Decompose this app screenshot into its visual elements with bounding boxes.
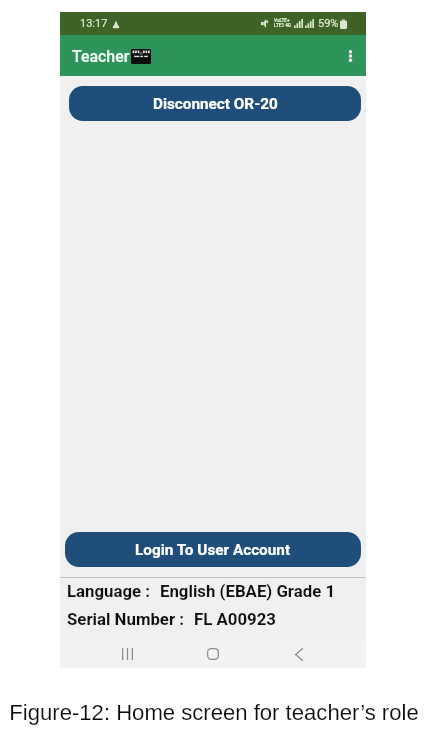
staticText: Login To User Account [135, 541, 291, 559]
staticText: Serial Number : [67, 609, 185, 629]
staticText: English (EBAE) Grade 1 [160, 581, 336, 601]
staticText: 13:17 [80, 17, 108, 30]
staticText: Teacher [72, 47, 130, 66]
button[interactable]: Home [170, 640, 256, 668]
staticText: Figure-12: Home screen for teacher’s rol… [0, 700, 430, 725]
staticText: LTE1 4G [274, 23, 291, 28]
staticText: Language : [67, 581, 151, 601]
button[interactable]: Login To User Account [65, 532, 361, 567]
staticText: VoLTE+ [274, 18, 290, 23]
staticText: FL A00923 [194, 609, 276, 629]
button[interactable]: More options [336, 35, 366, 76]
button[interactable]: Recents [84, 640, 170, 668]
staticText: 59% [318, 17, 339, 30]
staticText: Disconnect OR-20 [153, 95, 278, 113]
button[interactable]: Disconnect OR-20 [69, 86, 361, 121]
button[interactable]: Back [256, 640, 342, 668]
